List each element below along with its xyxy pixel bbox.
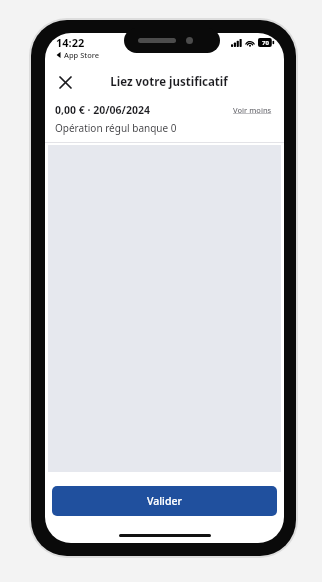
staticText: Opération régul banque 0 (55, 121, 177, 135)
staticText: Voir moins (233, 105, 272, 115)
button[interactable]: Voir moins (231, 103, 274, 117)
staticText: 70 (262, 39, 269, 47)
staticText: App Store (64, 50, 100, 60)
button[interactable]: Fermer (50, 67, 80, 97)
staticText: Valider (147, 494, 182, 508)
button[interactable]: Valider (52, 486, 277, 516)
staticText: 0,00 € · 20/06/2024 (55, 103, 150, 117)
staticText: Liez votre justificatif (110, 74, 228, 90)
staticText: 14:22 (56, 35, 85, 50)
